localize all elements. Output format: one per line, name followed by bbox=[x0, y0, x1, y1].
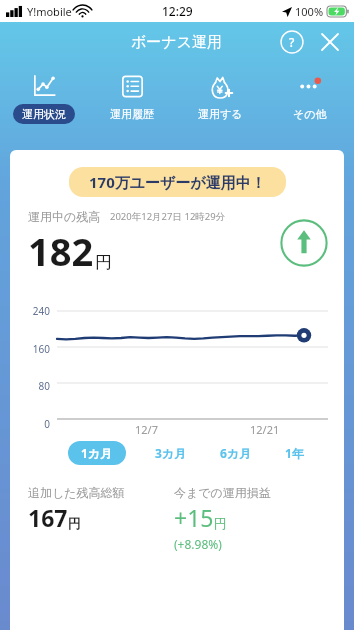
staticText: 2020年12月27日 12時29分 bbox=[110, 210, 226, 223]
staticText: 12:29 bbox=[162, 3, 193, 19]
button[interactable]: 6カ月 bbox=[216, 441, 256, 465]
button[interactable]: その他 bbox=[265, 68, 354, 130]
staticText: Y!mobile bbox=[27, 4, 72, 19]
staticText: 運用状況 bbox=[22, 107, 66, 121]
staticText: 今までの運用損益 bbox=[174, 485, 271, 500]
staticText: ? bbox=[289, 34, 295, 50]
button[interactable]: Close bbox=[318, 30, 342, 54]
staticText: 3カ月 bbox=[155, 445, 187, 461]
staticText: 80 bbox=[18, 379, 50, 393]
staticText: 0 bbox=[18, 417, 50, 431]
staticText: 運用履歴 bbox=[110, 107, 154, 121]
staticText: 運用する bbox=[198, 107, 243, 121]
staticText: 運用中の残高 bbox=[28, 209, 101, 224]
staticText: 100% bbox=[295, 4, 324, 19]
button[interactable]: 1年 bbox=[281, 441, 308, 465]
button[interactable]: 170万ユーザーが運用中！ bbox=[69, 167, 286, 197]
staticText: 円 bbox=[68, 515, 81, 531]
staticText: 240 bbox=[18, 304, 50, 318]
button[interactable]: 運用する bbox=[176, 68, 265, 130]
button[interactable]: 1カ月 bbox=[68, 441, 126, 465]
staticText: 12/7 bbox=[135, 422, 158, 437]
staticText: 1年 bbox=[285, 445, 304, 461]
staticText: 182 bbox=[28, 225, 94, 277]
staticText: 円 bbox=[214, 515, 227, 531]
staticText: 12/21 bbox=[250, 422, 280, 437]
button[interactable]: 運用状況 bbox=[0, 68, 88, 130]
staticText: (+8.98%) bbox=[174, 536, 222, 552]
staticText: ボーナス運用 bbox=[131, 33, 223, 52]
staticText: 160 bbox=[18, 342, 50, 356]
staticText: 1カ月 bbox=[81, 445, 113, 461]
staticText: 追加した残高総額 bbox=[28, 485, 125, 500]
staticText: +15 bbox=[174, 502, 214, 533]
staticText: 6カ月 bbox=[220, 445, 252, 461]
button[interactable]: 3カ月 bbox=[151, 441, 191, 465]
staticText: 167 bbox=[28, 502, 68, 533]
staticText: 円 bbox=[95, 252, 112, 273]
button[interactable]: Increase bbox=[280, 219, 328, 267]
button[interactable]: 運用履歴 bbox=[88, 68, 176, 130]
button[interactable]: Help bbox=[280, 30, 304, 54]
staticText: その他 bbox=[293, 107, 327, 121]
staticText: 170万ユーザーが運用中！ bbox=[89, 172, 266, 192]
